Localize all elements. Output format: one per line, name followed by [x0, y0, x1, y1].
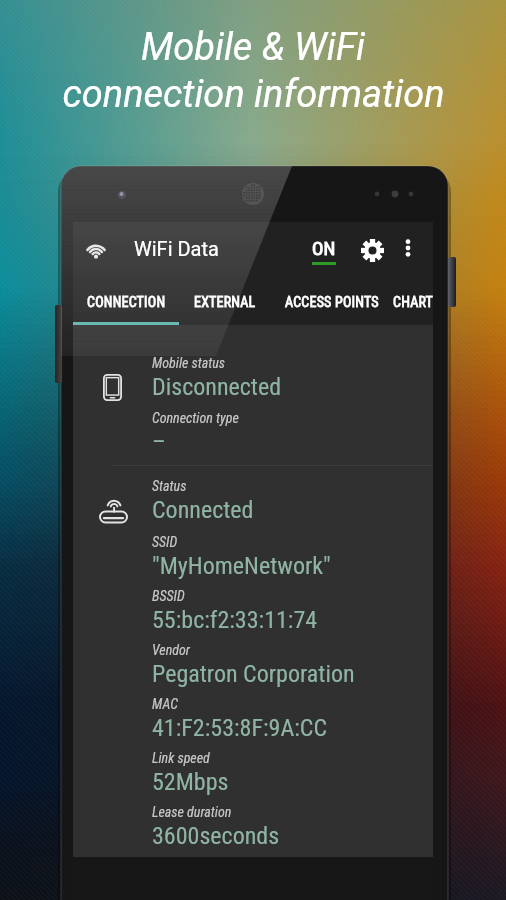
button[interactable]: BSSID [152, 588, 433, 642]
staticText: CONNECTION [87, 294, 166, 310]
staticText: 55:bc:f2:33:11:74 [152, 606, 318, 634]
button[interactable]: More options [390, 230, 426, 266]
staticText: 41:F2:53:8F:9A:CC [152, 714, 328, 742]
staticText: Pegatron Corporation [152, 660, 355, 688]
staticText: Status [152, 478, 187, 494]
staticText: Connected [152, 496, 254, 524]
staticText: SSID [152, 534, 178, 550]
staticText: Disconnected [152, 373, 282, 401]
staticText: ON [312, 237, 336, 259]
button[interactable]: Mobile status [152, 355, 433, 409]
button[interactable]: Lease duration [152, 804, 433, 857]
staticText: "MyHomeNetwork" [152, 552, 331, 580]
staticText: Connection type [152, 410, 239, 426]
button[interactable]: Vendor [152, 642, 433, 696]
staticText: ACCESS POINTS [285, 294, 379, 310]
staticText: WiFi Data [134, 237, 219, 260]
staticText: – [152, 428, 166, 456]
staticText: Mobile & WiFi [141, 25, 365, 70]
staticText: 3600seconds [152, 822, 280, 850]
button[interactable]: ON [306, 237, 341, 265]
button[interactable]: MAC [152, 696, 433, 750]
button[interactable]: SSID [152, 534, 433, 588]
staticText: BSSID [152, 588, 185, 604]
button[interactable]: CONNECTION [73, 278, 179, 325]
staticText: Vendor [152, 642, 190, 658]
button[interactable]: CHARTS [393, 278, 433, 325]
staticText: 52Mbps [152, 768, 229, 796]
staticText: Mobile status [152, 355, 226, 371]
button[interactable]: Wi-Fi status [73, 230, 119, 270]
button[interactable]: ACCESS POINTS [271, 278, 393, 325]
button[interactable]: Status [152, 478, 433, 532]
button[interactable]: Connection type [152, 410, 433, 464]
staticText: Lease duration [152, 804, 232, 820]
staticText: EXTERNAL [194, 294, 256, 310]
button[interactable]: Settings [352, 230, 392, 270]
staticText: CHARTS [393, 294, 433, 310]
staticText: Link speed [152, 750, 210, 766]
staticText: MAC [152, 696, 178, 712]
staticText: connection information [62, 72, 445, 117]
button[interactable]: Link speed [152, 750, 433, 804]
button[interactable]: EXTERNAL [179, 278, 271, 325]
